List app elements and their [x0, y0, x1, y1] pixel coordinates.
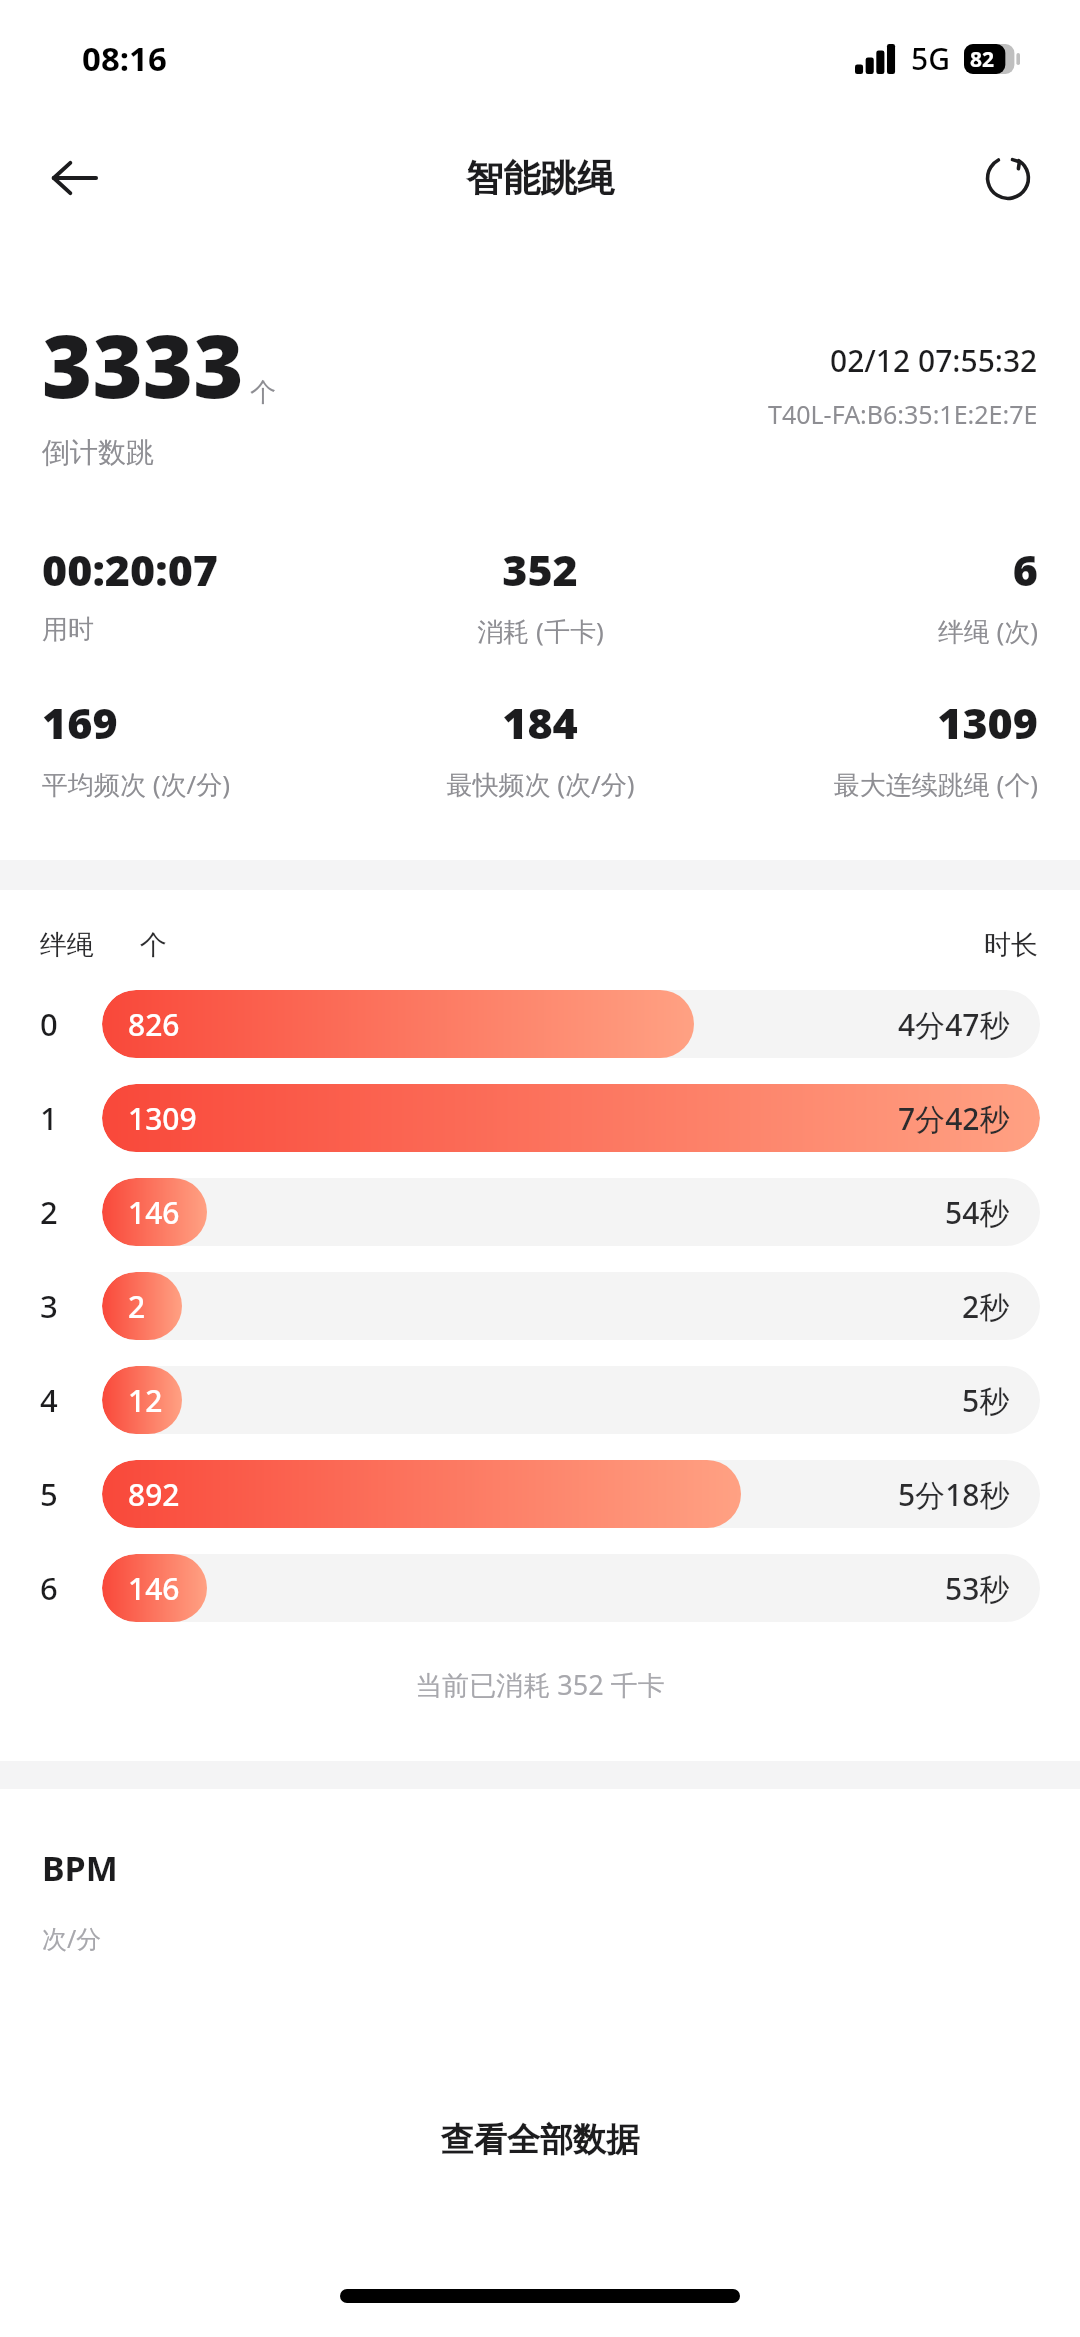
staticText: 02/12 07:55:32 — [830, 340, 1038, 381]
staticText: 146 — [128, 1192, 180, 1233]
staticText: 82 — [970, 45, 995, 74]
staticText: 2秒 — [962, 1286, 1010, 1327]
staticText: 个 — [140, 928, 167, 962]
staticText: 当前已消耗 352 千卡 — [0, 1666, 1080, 1703]
staticText: 184 — [502, 693, 578, 752]
staticText: BPM — [42, 1845, 118, 1891]
button[interactable]: 6 — [40, 1554, 1040, 1622]
staticText: 169 — [42, 693, 118, 752]
button[interactable]: 2 — [40, 1178, 1040, 1246]
staticText: 绊绳 (次) — [937, 613, 1038, 649]
staticText: 6 — [1012, 540, 1038, 599]
staticText: T40L-FA:B6:35:1E:2E:7E — [768, 397, 1038, 431]
staticText: 00:20:07 — [42, 540, 219, 599]
staticText: 平均频次 (次/分) — [42, 766, 231, 802]
button[interactable]: Back — [32, 136, 116, 220]
staticText: 倒计数跳 — [42, 435, 154, 470]
staticText: 5秒 — [962, 1380, 1010, 1421]
staticText: 892 — [128, 1474, 180, 1515]
staticText: 146 — [128, 1568, 180, 1609]
staticText: 1309 — [128, 1098, 197, 1139]
button[interactable]: 查看全部数据 — [0, 2093, 1080, 2187]
staticText: 个 — [250, 376, 276, 409]
staticText: 时长 — [984, 928, 1038, 962]
button[interactable]: 4 — [40, 1366, 1040, 1434]
staticText: 最快频次 (次/分) — [446, 766, 635, 802]
button[interactable]: 3 — [40, 1272, 1040, 1340]
staticText: 12 — [128, 1380, 163, 1421]
staticText: 3 — [40, 1285, 58, 1327]
staticText: 2 — [40, 1191, 58, 1233]
staticText: 4分47秒 — [898, 1004, 1010, 1045]
button[interactable]: 1 — [40, 1084, 1040, 1152]
staticText: 1 — [40, 1097, 58, 1139]
staticText: 352 — [502, 540, 578, 599]
staticText: 6 — [40, 1567, 58, 1609]
staticText: 5分18秒 — [898, 1474, 1010, 1515]
staticText: 4 — [40, 1379, 58, 1421]
staticText: 最大连续跳绳 (个) — [833, 766, 1038, 802]
staticText: 1309 — [937, 693, 1038, 752]
button[interactable]: 5 — [40, 1460, 1040, 1528]
staticText: 0 — [40, 1003, 58, 1045]
staticText: 2 — [128, 1286, 146, 1327]
staticText: 08:16 — [82, 36, 167, 81]
staticText: 智能跳绳 — [466, 155, 614, 202]
staticText: 54秒 — [945, 1192, 1010, 1233]
staticText: 查看全部数据 — [0, 2119, 1080, 2161]
staticText: 绊绳 — [40, 928, 94, 962]
staticText: 次/分 — [42, 1921, 102, 1955]
staticText: 7分42秒 — [898, 1098, 1010, 1139]
staticText: 826 — [128, 1004, 180, 1045]
staticText: 5G — [911, 38, 950, 79]
staticText: 消耗 (千卡) — [477, 613, 604, 649]
staticText: 用时 — [42, 613, 94, 646]
button[interactable]: 0 — [40, 990, 1040, 1058]
button[interactable]: Refresh — [966, 136, 1050, 220]
staticText: 5 — [40, 1473, 58, 1515]
staticText: 53秒 — [945, 1568, 1010, 1609]
staticText: 3333 — [42, 306, 244, 423]
